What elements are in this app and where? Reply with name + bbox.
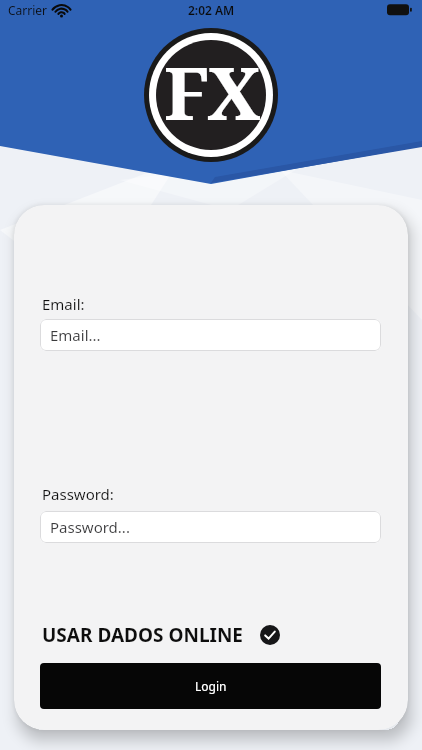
staticText: FX bbox=[164, 42, 259, 141]
staticText: Login bbox=[195, 678, 227, 694]
button[interactable]: Password... bbox=[40, 511, 381, 543]
staticText: Email: bbox=[42, 294, 85, 314]
button[interactable]: Login bbox=[40, 663, 381, 709]
button[interactable]: USAR DADOS ONLINE bbox=[42, 622, 280, 648]
staticText: Password: bbox=[42, 484, 114, 504]
staticText: Email... bbox=[50, 325, 101, 345]
staticText: Carrier bbox=[8, 2, 48, 18]
staticText: 2:02 AM bbox=[188, 2, 235, 18]
button[interactable]: Email... bbox=[40, 319, 381, 351]
staticText: Password... bbox=[50, 517, 130, 537]
staticText: USAR DADOS ONLINE bbox=[42, 622, 243, 648]
